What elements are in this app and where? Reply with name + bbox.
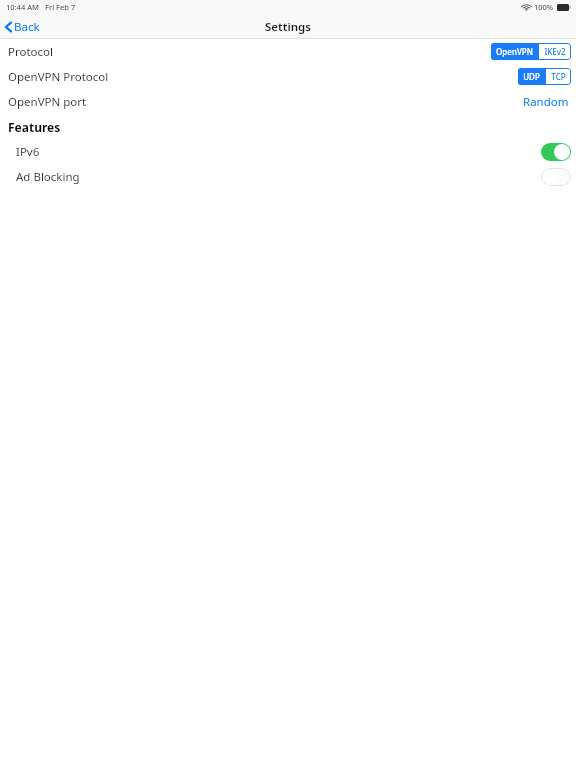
- staticText: Features: [8, 119, 61, 135]
- staticText: Back: [14, 19, 40, 35]
- staticText: Fri Feb 7: [45, 2, 76, 12]
- button[interactable]: IKEv2: [539, 43, 571, 60]
- button[interactable]: Protocol: [0, 39, 576, 64]
- button[interactable]: TCP: [546, 68, 571, 85]
- staticText: IKEv2: [544, 46, 566, 57]
- button[interactable]: IPv6 toggle: [541, 143, 571, 161]
- staticText: Settings: [265, 19, 311, 35]
- staticText: UDP: [523, 71, 540, 82]
- button[interactable]: OpenVPN Protocol: [0, 64, 576, 89]
- button[interactable]: OpenVPN port: [0, 89, 576, 114]
- staticText: OpenVPN: [496, 46, 533, 57]
- staticText: OpenVPN Protocol: [8, 69, 109, 85]
- button[interactable]: IPv6: [0, 139, 576, 164]
- staticText: Random: [523, 94, 569, 110]
- staticText: 10:44 AM: [6, 2, 39, 12]
- staticText: 100%: [534, 2, 554, 12]
- staticText: OpenVPN port: [8, 94, 87, 110]
- staticText: Protocol: [8, 44, 53, 60]
- button[interactable]: UDP: [518, 68, 545, 85]
- button[interactable]: Ad Blocking: [0, 164, 576, 189]
- button[interactable]: Random: [521, 91, 571, 113]
- button[interactable]: Ad Blocking toggle: [541, 168, 571, 186]
- staticText: TCP: [551, 71, 566, 82]
- button[interactable]: OpenVPN: [491, 43, 538, 60]
- button[interactable]: Back: [0, 16, 46, 38]
- staticText: Ad Blocking: [16, 169, 80, 185]
- staticText: IPv6: [16, 144, 40, 160]
